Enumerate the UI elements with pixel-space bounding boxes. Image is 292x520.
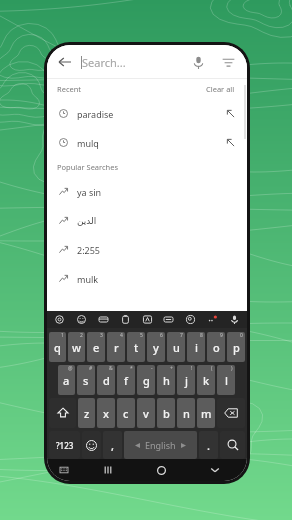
button[interactable]: sym	[49, 431, 80, 459]
button[interactable]: 5	[127, 332, 145, 362]
staticText: )	[231, 365, 233, 372]
staticText: +	[170, 365, 173, 372]
staticText: 1	[61, 332, 64, 339]
staticText: mulk	[77, 273, 99, 285]
staticText: p	[233, 340, 240, 355]
button[interactable]: Keyboard tool 5	[161, 312, 176, 327]
button[interactable]: Keyboard tool 7	[205, 312, 220, 327]
staticText: 2	[80, 332, 83, 339]
button[interactable]: del	[217, 398, 245, 428]
staticText: 2:255	[77, 244, 101, 256]
staticText: paradise	[77, 108, 114, 120]
button[interactable]: mulq	[47, 128, 247, 157]
button[interactable]: #	[77, 365, 95, 395]
button[interactable]: Keyboard tool 3	[118, 312, 133, 327]
button[interactable]: 2	[68, 332, 85, 362]
staticText: 5	[140, 332, 143, 339]
button[interactable]: Back	[188, 459, 241, 481]
button[interactable]: b	[157, 398, 175, 428]
staticText: g	[143, 373, 150, 388]
staticText: *	[130, 365, 133, 372]
staticText: n	[183, 406, 190, 421]
button[interactable]: paradise	[47, 99, 247, 128]
staticText: y	[153, 340, 159, 355]
staticText: Clear all	[206, 84, 235, 94]
staticText: Search...	[82, 55, 126, 70]
staticText: (	[211, 365, 213, 372]
button[interactable]: Keyboard tool 6	[183, 312, 198, 327]
button[interactable]: z	[78, 398, 95, 428]
button[interactable]: 6	[147, 332, 165, 362]
button[interactable]: m	[197, 398, 215, 428]
button[interactable]: 3	[87, 332, 105, 362]
staticText: i	[195, 340, 198, 355]
button[interactable]: Back	[55, 52, 75, 72]
button[interactable]: &	[97, 365, 115, 395]
button[interactable]: .	[199, 431, 218, 459]
staticText: e	[93, 340, 100, 355]
button[interactable]: 9	[207, 332, 225, 362]
staticText: Recent	[57, 84, 82, 94]
button[interactable]: (	[197, 365, 215, 395]
button[interactable]: 1	[49, 332, 66, 362]
button[interactable]: -	[137, 365, 155, 395]
button[interactable]: )	[217, 365, 235, 395]
button[interactable]: emoji	[82, 431, 101, 459]
staticText: u	[173, 340, 180, 355]
button[interactable]: *	[117, 365, 135, 395]
staticText: w	[72, 340, 81, 355]
button[interactable]: x	[97, 398, 115, 428]
button[interactable]: search	[220, 431, 245, 459]
staticText: @	[68, 365, 73, 372]
staticText: Popular Searches	[57, 162, 119, 172]
staticText: q	[54, 340, 61, 355]
button[interactable]: Keyboard tool 2	[96, 312, 111, 327]
button[interactable]: Keyboard tool 8	[227, 312, 242, 327]
button[interactable]: v	[137, 398, 155, 428]
button[interactable]: Keyboard tool 4	[140, 312, 155, 327]
button[interactable]: c	[117, 398, 135, 428]
staticText: English	[145, 439, 176, 451]
staticText: t	[134, 340, 139, 355]
staticText: k	[203, 373, 210, 388]
staticText: b	[163, 406, 170, 421]
staticText: 0	[240, 332, 243, 339]
staticText: ?123	[56, 440, 74, 451]
staticText: 4	[120, 332, 123, 339]
button[interactable]: الدين	[47, 206, 247, 235]
button[interactable]: Voice search	[187, 51, 209, 73]
staticText: h	[163, 373, 170, 388]
staticText: 6	[160, 332, 163, 339]
button[interactable]: 0	[227, 332, 245, 362]
button[interactable]: Hide keyboard	[47, 459, 81, 481]
button[interactable]: 8	[187, 332, 205, 362]
button[interactable]: n	[177, 398, 195, 428]
button[interactable]: Keyboard tool 0	[52, 312, 67, 327]
button[interactable]: ya sin	[47, 177, 247, 206]
button[interactable]: Filter	[217, 51, 239, 73]
button[interactable]: 2:255	[47, 235, 247, 264]
staticText: ya sin	[77, 186, 102, 198]
button[interactable]: 7	[167, 332, 185, 362]
button[interactable]: mulk	[47, 264, 247, 293]
button[interactable]: ,	[103, 431, 122, 459]
staticText: 9	[220, 332, 223, 339]
staticText: c	[123, 406, 129, 421]
staticText: m	[201, 406, 212, 421]
button[interactable]: Keyboard tool 1	[74, 312, 89, 327]
button[interactable]: @	[58, 365, 75, 395]
staticText: j	[185, 373, 188, 388]
staticText: -	[151, 365, 153, 372]
button[interactable]: !	[177, 365, 195, 395]
button[interactable]: +	[157, 365, 175, 395]
button[interactable]: shift	[49, 398, 76, 428]
button[interactable]: English	[124, 431, 197, 459]
button[interactable]: 4	[107, 332, 125, 362]
button[interactable]: Home	[135, 459, 188, 481]
staticText: v	[143, 406, 149, 421]
staticText: f	[124, 373, 128, 388]
staticText: الدين	[77, 216, 97, 226]
staticText: z	[84, 406, 90, 421]
button[interactable]: Recents	[81, 459, 135, 481]
button[interactable]: Clear all	[204, 82, 237, 96]
